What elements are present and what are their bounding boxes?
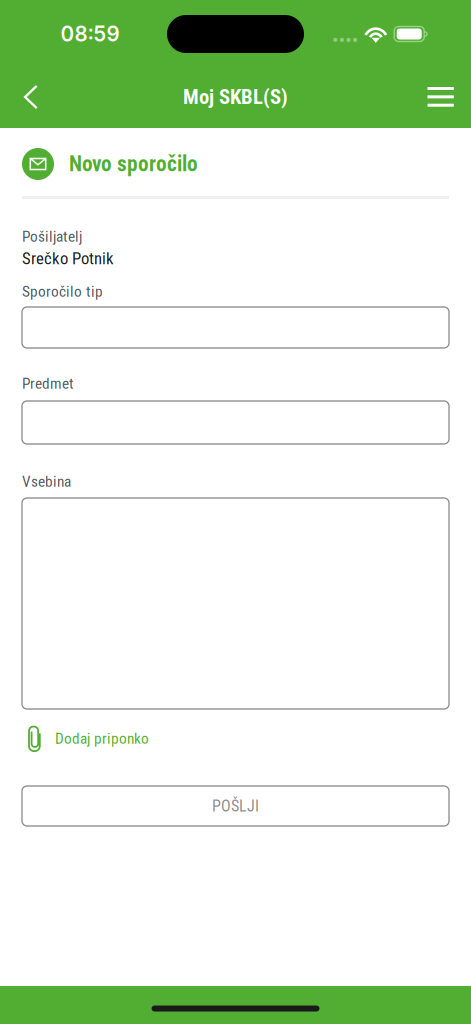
staticText: Predmet — [22, 374, 74, 392]
button[interactable]: Back — [5, 68, 57, 126]
button[interactable]: Menu — [415, 68, 467, 126]
staticText: 08:59 — [60, 21, 119, 46]
staticText: Moj SKBL(S) — [183, 85, 288, 109]
staticText: Novo sporočilo — [69, 151, 198, 176]
staticText: POŠLJI — [212, 797, 259, 815]
staticText: Vsebina — [22, 472, 71, 490]
button[interactable]: Dodaj priponko — [22, 725, 149, 753]
staticText: Pošiljatelj — [22, 227, 82, 245]
staticText: Dodaj priponko — [55, 729, 149, 747]
button[interactable]: POŠLJI — [22, 786, 449, 826]
staticText: Sporočilo tip — [22, 282, 103, 300]
staticText: Srečko Potnik — [22, 249, 114, 268]
